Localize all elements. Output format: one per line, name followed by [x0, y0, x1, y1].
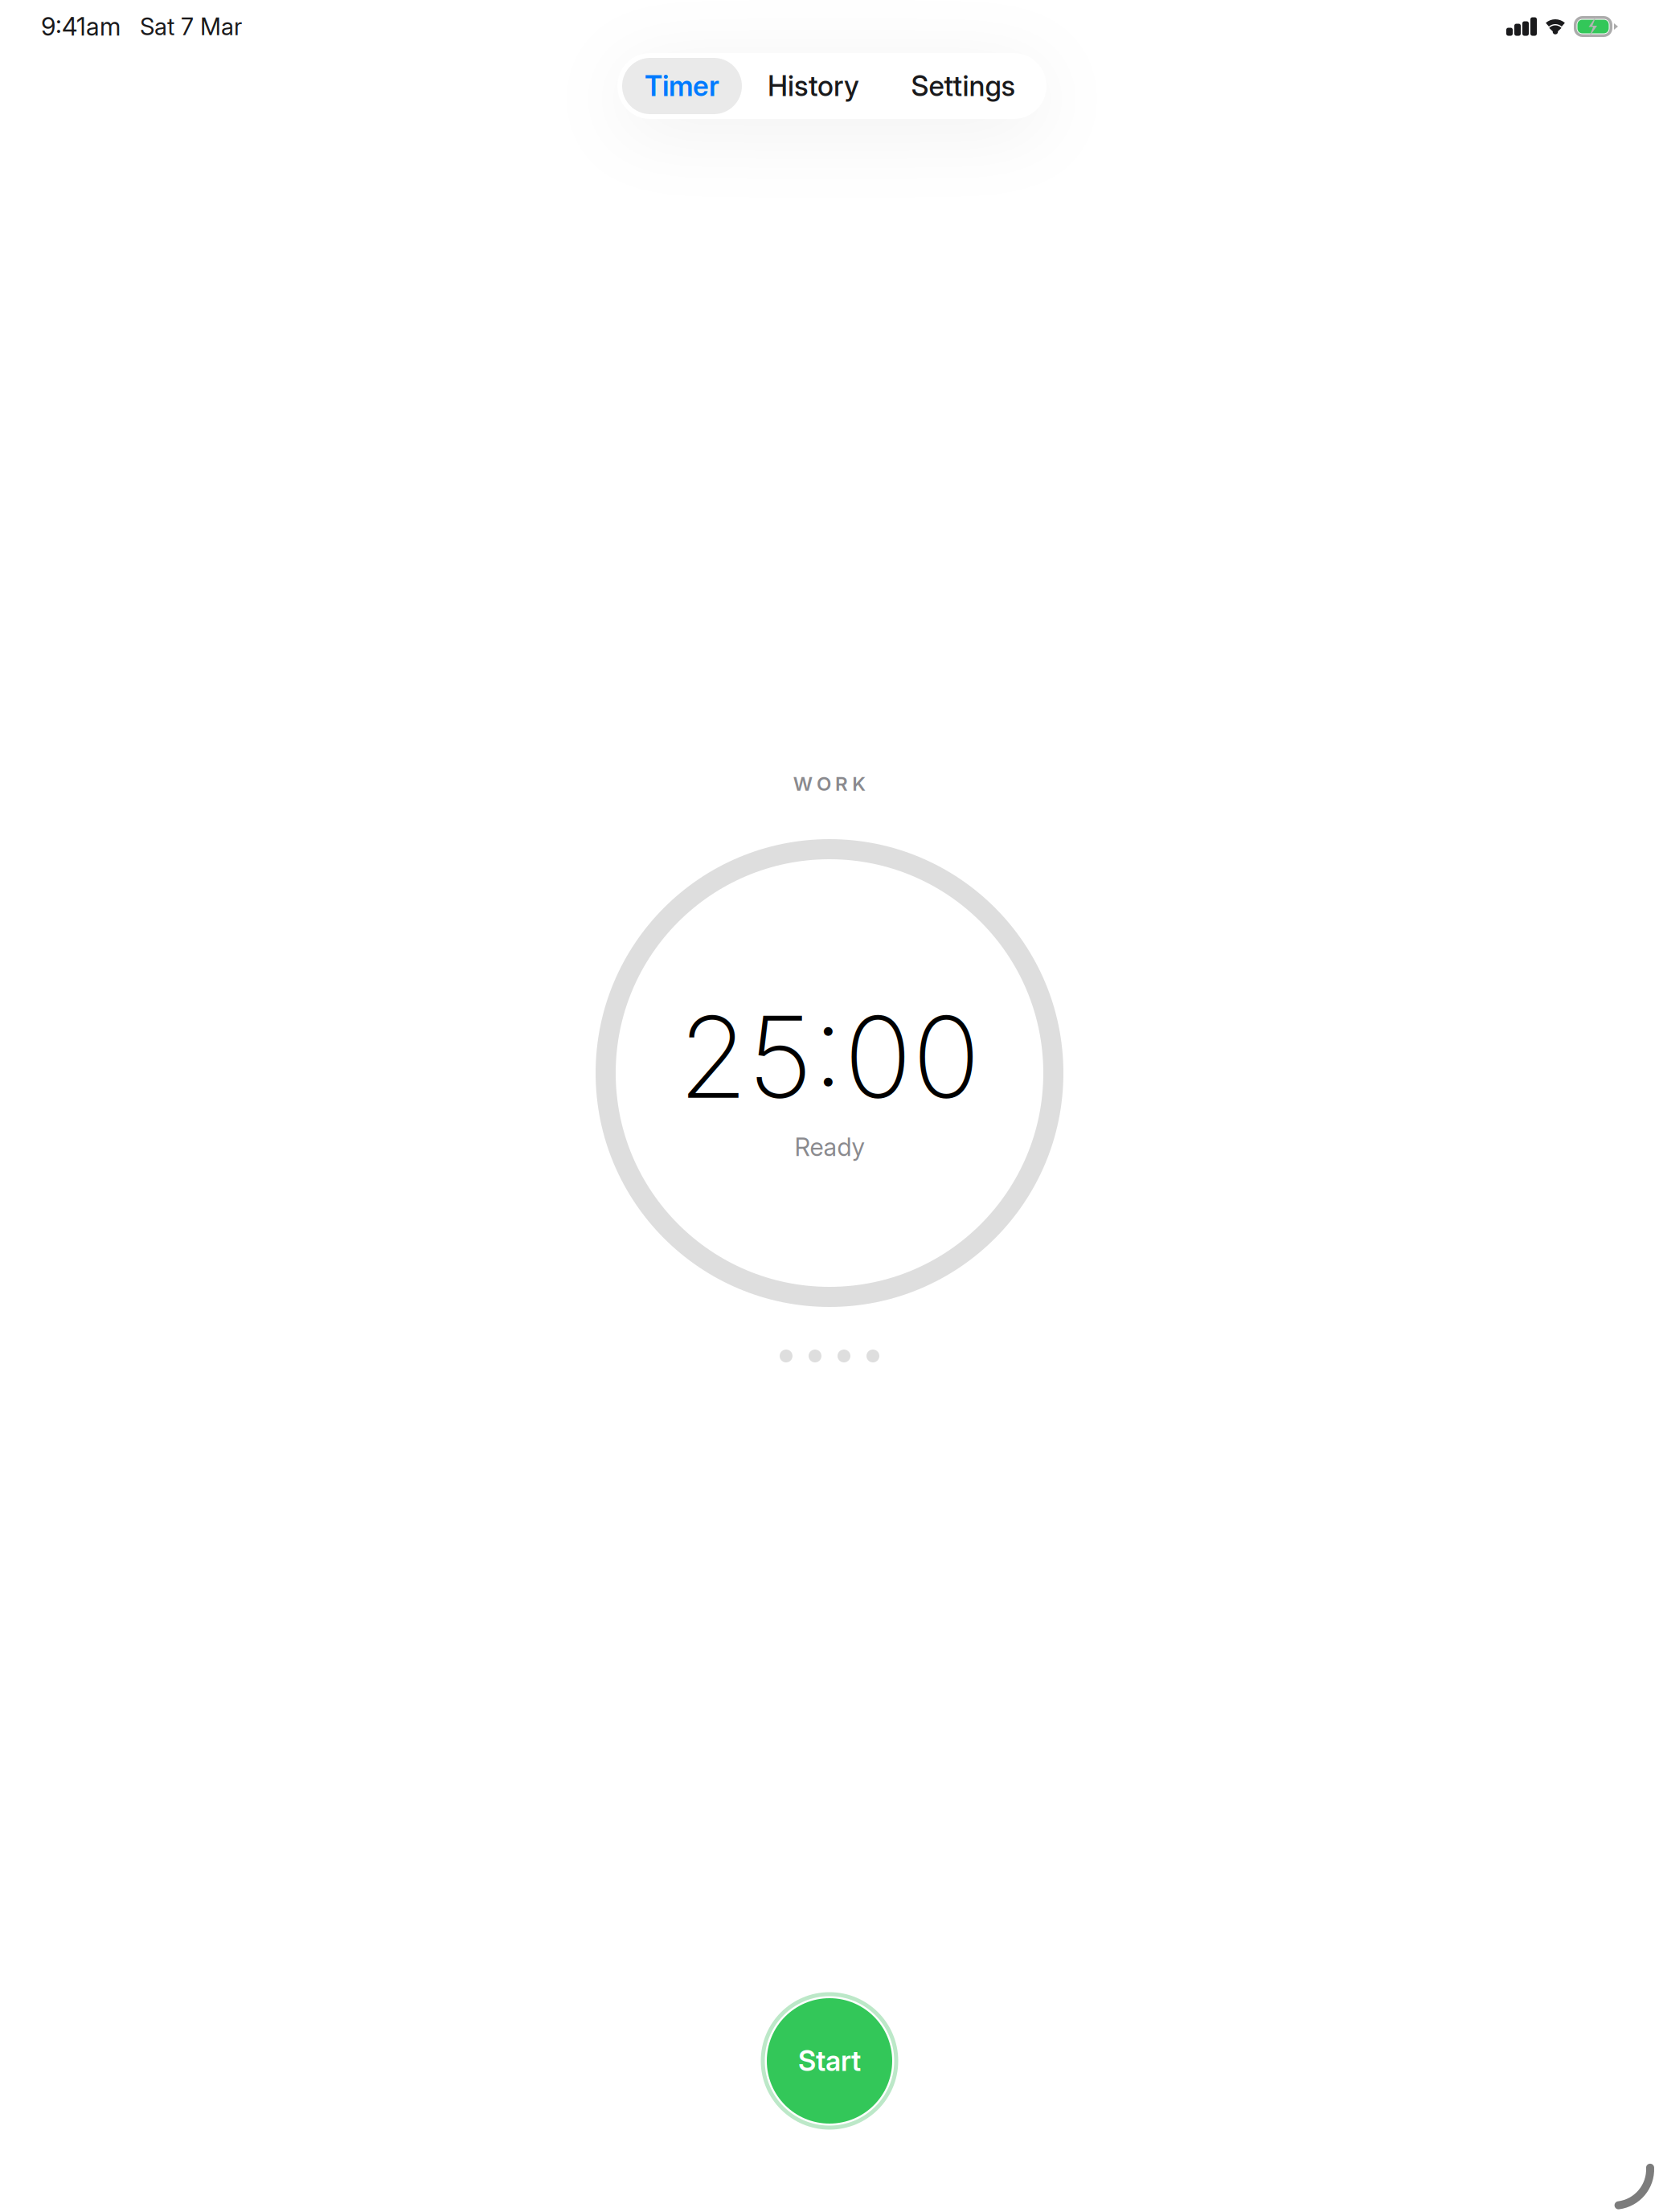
button[interactable]: Settings: [885, 58, 1042, 114]
staticText: History: [768, 69, 859, 103]
button[interactable]: Start: [757, 1989, 902, 2133]
staticText: Start: [798, 2044, 861, 2078]
staticText: 25:00: [678, 989, 981, 1125]
staticText: O: [817, 772, 831, 795]
staticText: W: [793, 772, 812, 795]
staticText: K: [852, 772, 866, 795]
staticText: Timer: [645, 69, 719, 103]
staticText: Ready: [795, 1132, 864, 1162]
button[interactable]: Session 2: [809, 1350, 821, 1362]
staticText: R: [835, 772, 848, 795]
button[interactable]: Session 3: [838, 1350, 850, 1362]
button[interactable]: Session 4: [866, 1350, 879, 1362]
button[interactable]: Timer: [622, 58, 742, 114]
staticText: Sat 7 Mar: [121, 12, 242, 41]
button[interactable]: Session 1: [780, 1350, 793, 1362]
button[interactable]: History: [742, 58, 885, 114]
staticText: 9:41am: [41, 12, 121, 41]
staticText: Settings: [911, 69, 1016, 103]
